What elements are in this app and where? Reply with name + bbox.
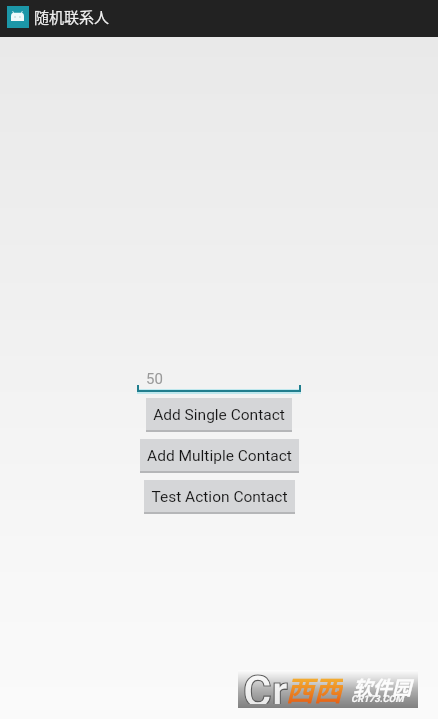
staticText: Cr	[243, 666, 288, 704]
button[interactable]: CR173 watermark	[238, 670, 418, 708]
staticText: 随机联系人	[34, 6, 110, 28]
staticText: Add Multiple Contact	[147, 447, 292, 465]
button[interactable]: Test Action Contact	[144, 480, 295, 514]
staticText: 软件园	[353, 672, 412, 700]
staticText: Cr	[243, 666, 288, 704]
staticText: Add Single Contact	[153, 406, 285, 424]
staticText: 50	[146, 370, 163, 388]
button[interactable]: App icon	[7, 6, 29, 28]
staticText: CR173.COM	[351, 693, 404, 704]
button[interactable]: Add Single Contact	[146, 398, 292, 432]
staticText: 西西	[286, 669, 343, 707]
staticText: Test Action Contact	[151, 488, 288, 506]
button[interactable]: Add Multiple Contact	[140, 439, 299, 473]
